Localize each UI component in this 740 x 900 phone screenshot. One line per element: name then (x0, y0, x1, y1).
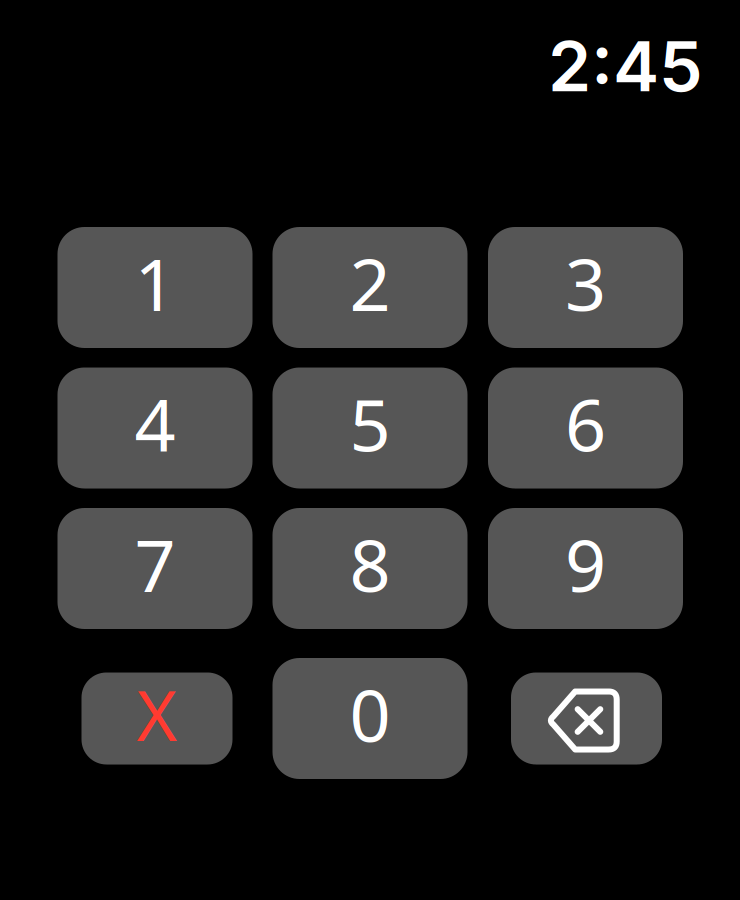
staticText: 7 (134, 515, 175, 613)
staticText: 2:45 (548, 24, 703, 108)
staticText: 0 (349, 665, 390, 763)
staticText: 6 (565, 374, 606, 473)
button[interactable]: 9 (488, 508, 683, 629)
button[interactable]: 0 (272, 658, 467, 779)
button[interactable]: 2 (272, 227, 467, 348)
staticText: X (136, 667, 177, 761)
button[interactable]: Delete (511, 672, 662, 764)
staticText: 1 (134, 234, 175, 332)
button[interactable]: 7 (57, 508, 252, 629)
staticText: 9 (565, 515, 606, 613)
staticText: 2 (349, 234, 390, 332)
button[interactable]: 5 (272, 367, 467, 488)
staticText: 4 (134, 374, 175, 473)
staticText: 8 (349, 515, 390, 613)
button[interactable]: Cancel (81, 672, 232, 764)
staticText: 3 (565, 234, 606, 332)
button[interactable]: 8 (272, 508, 467, 629)
staticText: 5 (349, 374, 390, 473)
button[interactable]: 4 (57, 367, 252, 488)
button[interactable]: 3 (488, 227, 683, 348)
button[interactable]: 6 (488, 367, 683, 488)
button[interactable]: 1 (57, 227, 252, 348)
